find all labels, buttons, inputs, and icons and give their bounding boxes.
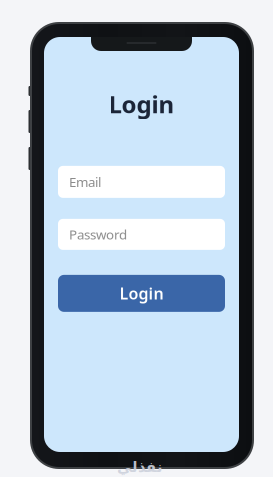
staticText: Email (69, 173, 101, 191)
staticText: Login (108, 88, 174, 120)
button[interactable]: Email (58, 166, 225, 198)
staticText: Login (119, 283, 163, 304)
button[interactable]: Login (58, 275, 225, 312)
button[interactable]: Password (58, 219, 225, 250)
staticText: Password (69, 225, 127, 243)
staticText: نفذلي (116, 459, 162, 475)
